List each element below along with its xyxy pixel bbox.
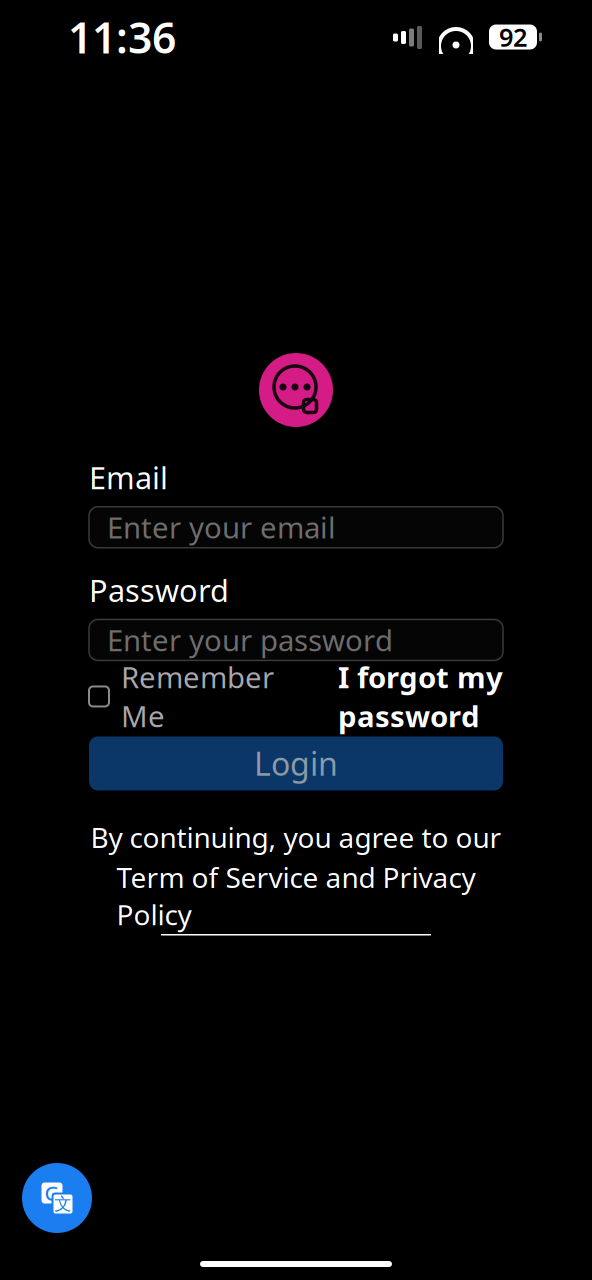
staticText: G	[44, 1180, 59, 1206]
staticText: By continuing, you agree to our	[90, 818, 501, 856]
button[interactable]: Translate	[22, 1163, 92, 1233]
button[interactable]: Login	[89, 736, 503, 790]
button[interactable]: Remember Me	[89, 657, 274, 735]
staticText: I forgot my password	[338, 657, 503, 735]
staticText: Password	[89, 570, 229, 610]
button[interactable]: Term of Service and Privacy Policy	[116, 859, 475, 935]
staticText: 文	[54, 1193, 71, 1215]
staticText: Enter your password	[107, 620, 393, 659]
staticText: 11:36	[68, 9, 176, 65]
staticText: 92	[499, 20, 527, 54]
staticText: Email	[89, 457, 168, 498]
staticText: Enter your email	[107, 508, 336, 547]
staticText: Remember Me	[121, 657, 274, 735]
staticText: Term of Service and Privacy Policy	[116, 859, 475, 933]
button[interactable]: I forgot my password	[338, 657, 503, 735]
staticText: Login	[254, 742, 338, 785]
